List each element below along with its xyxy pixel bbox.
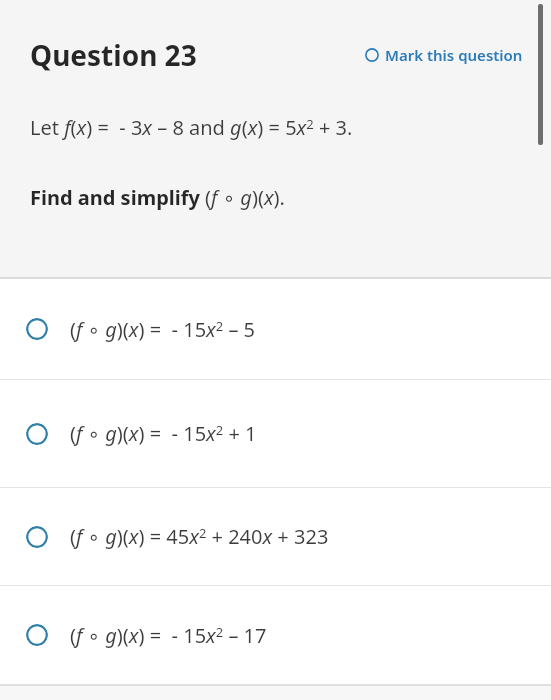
- button[interactable]: Mark this question: [365, 41, 523, 69]
- staticText: Mark this question: [385, 45, 523, 65]
- other: Select answer: [26, 624, 48, 646]
- staticText: Question 23: [30, 36, 197, 74]
- staticText: (f ∘ g)(x) = - 15x2 – 5: [70, 316, 256, 343]
- other: Select answer: [26, 318, 48, 340]
- staticText: Let f(x) = - 3x – 8 and g(x) = 5x2 + 3.: [30, 114, 353, 141]
- staticText: (f ∘ g)(x) = 45x2 + 240x + 323: [70, 523, 329, 550]
- other: Select answer: [26, 526, 48, 548]
- staticText: Find and simplify (f ∘ g)(x).: [30, 184, 285, 211]
- other: Select answer: [26, 423, 48, 445]
- button[interactable]: Select answer: [0, 488, 551, 585]
- button[interactable]: Select answer: [0, 380, 551, 487]
- staticText: (f ∘ g)(x) = - 15x2 – 17: [70, 622, 267, 649]
- button[interactable]: Select answer: [0, 279, 551, 379]
- staticText: (f ∘ g)(x) = - 15x2 + 1: [70, 420, 257, 447]
- button[interactable]: Select answer: [0, 586, 551, 684]
